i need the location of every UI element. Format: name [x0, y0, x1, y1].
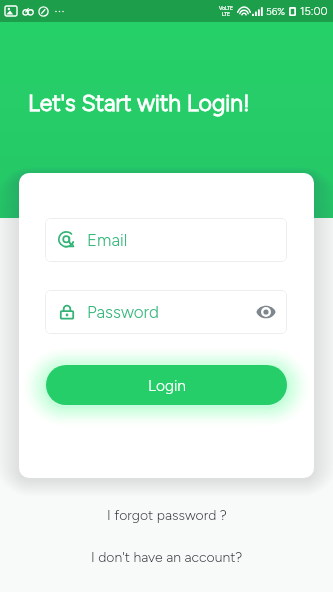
staticText: I forgot password ? — [107, 507, 227, 524]
staticText: LTE — [222, 11, 230, 17]
staticText: Password — [87, 302, 159, 322]
staticText: Let's Start with Login! — [28, 89, 250, 117]
button[interactable]: I forgot password ? — [93, 501, 241, 530]
staticText: 56% — [266, 5, 286, 17]
button[interactable]: Show password — [255, 301, 277, 323]
staticText: Email — [87, 230, 128, 250]
button[interactable]: Login — [46, 365, 287, 405]
staticText: 15:00 — [300, 5, 328, 18]
staticText: VoLTE — [219, 5, 233, 11]
button[interactable]: Email — [45, 218, 287, 262]
button[interactable]: Password — [45, 290, 287, 334]
button[interactable]: I don't have an account? — [77, 543, 257, 572]
staticText: I don't have an account? — [91, 549, 243, 566]
staticText: Login — [148, 376, 186, 395]
